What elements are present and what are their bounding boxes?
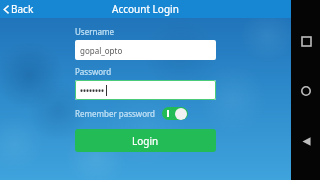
staticText: Password [75, 66, 112, 77]
button[interactable]: Remember password [75, 107, 188, 120]
button[interactable]: Home [297, 82, 315, 100]
button[interactable]: Recent apps [297, 32, 315, 50]
staticText: Remember password [75, 108, 156, 119]
button[interactable]: Back [0, 0, 40, 18]
staticText: gopal_opto [80, 45, 123, 56]
button[interactable]: Back [297, 132, 315, 150]
staticText: •••••••• [80, 85, 105, 96]
button[interactable]: Login [75, 129, 216, 152]
staticText: Username [75, 26, 114, 37]
other: Remember password toggle, on [162, 107, 188, 120]
staticText: Login [132, 134, 159, 148]
button[interactable]: •••••••• [75, 80, 216, 100]
button[interactable]: gopal_opto [75, 40, 216, 60]
staticText: Account Login [112, 2, 179, 16]
staticText: Back [11, 2, 34, 16]
